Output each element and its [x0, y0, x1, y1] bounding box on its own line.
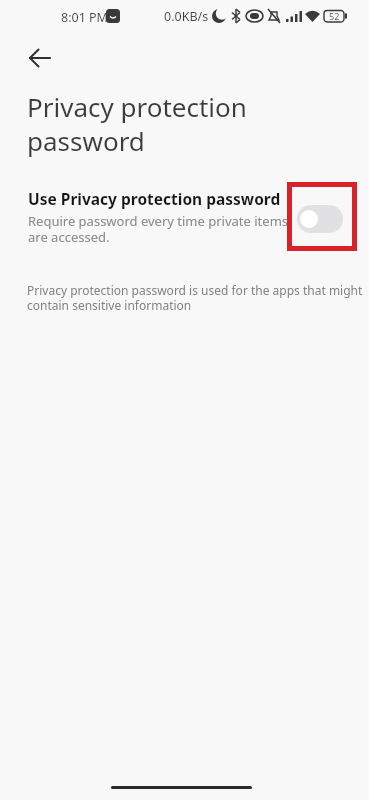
staticText: Privacy protection password is used for …: [27, 282, 363, 314]
button[interactable]: [297, 205, 343, 233]
staticText: Privacy protection password: [27, 89, 247, 158]
staticText: 0.0KB/s: [164, 8, 209, 25]
staticText: Use Privacy protection password: [28, 188, 281, 209]
staticText: Require password every time private item…: [28, 212, 289, 245]
button[interactable]: Use Privacy protection password: [0, 182, 369, 245]
staticText: 52: [329, 10, 340, 22]
button[interactable]: [22, 44, 56, 78]
staticText: 8:01 PM: [61, 9, 108, 26]
